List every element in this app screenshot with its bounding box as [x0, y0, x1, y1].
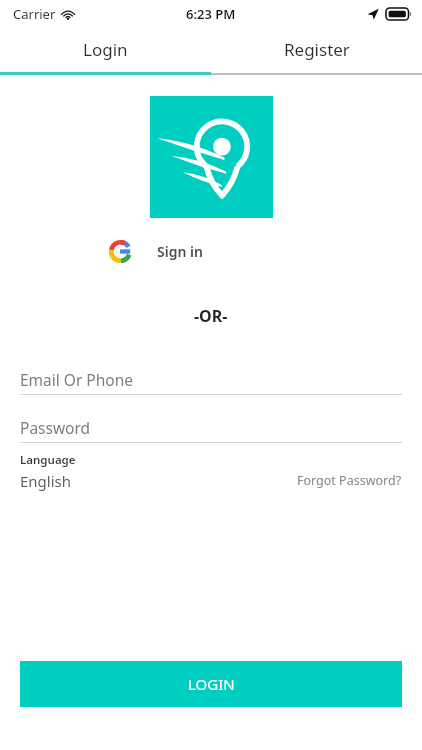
staticText: Password — [20, 417, 91, 438]
button[interactable]: Login — [0, 27, 211, 72]
staticText: Register — [284, 38, 350, 61]
button[interactable]: Language — [20, 452, 297, 491]
button[interactable]: LOGIN — [20, 661, 402, 707]
staticText: Email Or Phone — [20, 369, 134, 390]
staticText: English — [20, 471, 72, 491]
button[interactable]: Forgot Password? — [297, 472, 402, 491]
staticText: Language — [20, 452, 76, 468]
button[interactable]: Register — [211, 27, 422, 72]
staticText: Sign in — [157, 242, 203, 261]
button[interactable]: Google — [98, 231, 325, 272]
staticText: Forgot Password? — [297, 472, 402, 489]
staticText: Carrier — [13, 5, 56, 23]
staticText: 6:23 PM — [186, 5, 236, 23]
other: Google — [110, 241, 131, 262]
staticText: -OR- — [194, 305, 228, 327]
staticText: Login — [83, 38, 128, 61]
staticText: LOGIN — [188, 674, 235, 694]
button[interactable]: Email Or Phone — [20, 365, 402, 395]
button[interactable]: Password — [20, 413, 402, 443]
